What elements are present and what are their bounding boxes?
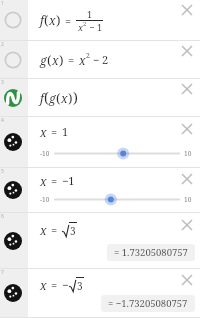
staticText: ( — [44, 11, 49, 29]
staticText: = — [51, 222, 58, 237]
staticText: x — [79, 52, 86, 68]
button[interactable]: 3 — [0, 79, 28, 116]
staticText: = — [51, 173, 58, 188]
staticText: = — [51, 277, 58, 292]
staticText: ( — [44, 88, 49, 107]
staticText: − 1 — [87, 21, 102, 33]
staticText: − — [62, 277, 69, 292]
staticText: x — [78, 21, 83, 33]
staticText: 7 — [1, 269, 4, 276]
staticText: 10 — [184, 195, 192, 204]
staticText: g — [40, 52, 47, 68]
staticText: ) — [73, 88, 78, 107]
staticText: 6 — [1, 213, 4, 220]
staticText: x — [61, 90, 68, 106]
staticText: 1 — [87, 8, 93, 20]
button[interactable]: = 1.73205080757 — [114, 246, 188, 259]
staticText: f — [40, 12, 44, 28]
button[interactable]: Delete — [178, 170, 195, 187]
staticText: 2 — [1, 41, 4, 48]
staticText: ( — [47, 51, 52, 69]
staticText: 1 — [62, 124, 69, 139]
staticText: 3 — [70, 224, 76, 238]
button[interactable]: 4 — [0, 117, 28, 167]
staticText: x — [40, 277, 47, 293]
staticText: ( — [56, 89, 61, 107]
staticText: x — [40, 124, 47, 140]
staticText: g — [49, 90, 56, 106]
button[interactable]: 2 — [0, 41, 28, 78]
staticText: = 1.73205080757 — [114, 246, 188, 259]
staticText: = — [65, 13, 72, 28]
staticText: 3 — [77, 279, 83, 293]
button[interactable]: Delete — [178, 80, 195, 97]
button[interactable]: = −1.73205080757 — [108, 297, 188, 310]
button[interactable]: 6 — [0, 213, 28, 268]
staticText: 4 — [1, 117, 4, 124]
staticText: x — [40, 222, 47, 238]
button[interactable]: Delete — [178, 1, 195, 18]
staticText: ) — [68, 89, 73, 107]
staticText: 3 — [1, 79, 4, 86]
staticText: = — [51, 124, 58, 139]
staticText: f — [40, 90, 44, 106]
staticText: = — [68, 52, 75, 67]
button[interactable]: 1 — [0, 0, 28, 40]
staticText: = −1.73205080757 — [108, 297, 188, 310]
button[interactable]: Delete — [178, 120, 195, 137]
button[interactable]: 5 — [0, 168, 28, 212]
staticText: x — [52, 52, 59, 68]
staticText: − 2 — [90, 52, 109, 67]
button[interactable]: 7 — [0, 269, 28, 317]
staticText: −1 — [62, 173, 75, 188]
button[interactable]: Delete — [178, 271, 195, 288]
staticText: ) — [59, 51, 64, 69]
staticText: -10 — [40, 195, 50, 204]
staticText: -10 — [40, 149, 50, 158]
staticText: 2 — [86, 51, 90, 61]
button[interactable]: Delete — [178, 216, 195, 233]
staticText: 10 — [184, 149, 192, 158]
button[interactable]: Delete — [178, 42, 195, 59]
staticText: 2 — [83, 20, 87, 28]
button[interactable] — [55, 147, 179, 160]
staticText: 5 — [1, 168, 4, 175]
staticText: x — [49, 12, 56, 28]
staticText: ) — [56, 11, 61, 29]
staticText: 1 — [1, 0, 4, 7]
button[interactable] — [55, 193, 179, 206]
staticText: x — [40, 173, 47, 189]
